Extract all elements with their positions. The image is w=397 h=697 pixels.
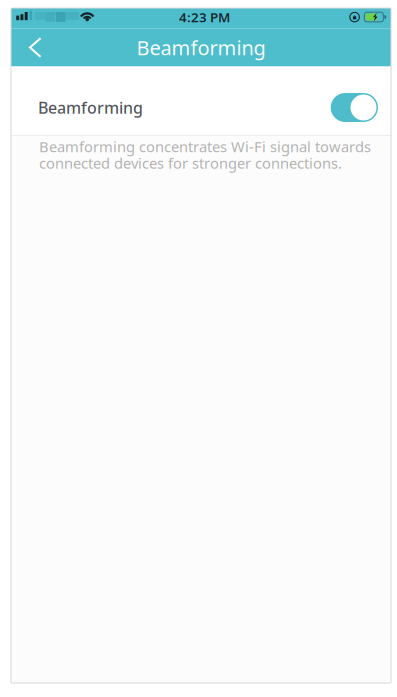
button[interactable]: Beamforming	[11, 66, 391, 135]
staticText: Beamforming	[136, 34, 265, 61]
staticText: Beamforming concentrates Wi-Fi signal to…	[39, 137, 371, 173]
button[interactable]: Back	[11, 28, 57, 66]
staticText: 4:23 PM	[179, 8, 230, 26]
staticText: Beamforming	[38, 97, 143, 118]
